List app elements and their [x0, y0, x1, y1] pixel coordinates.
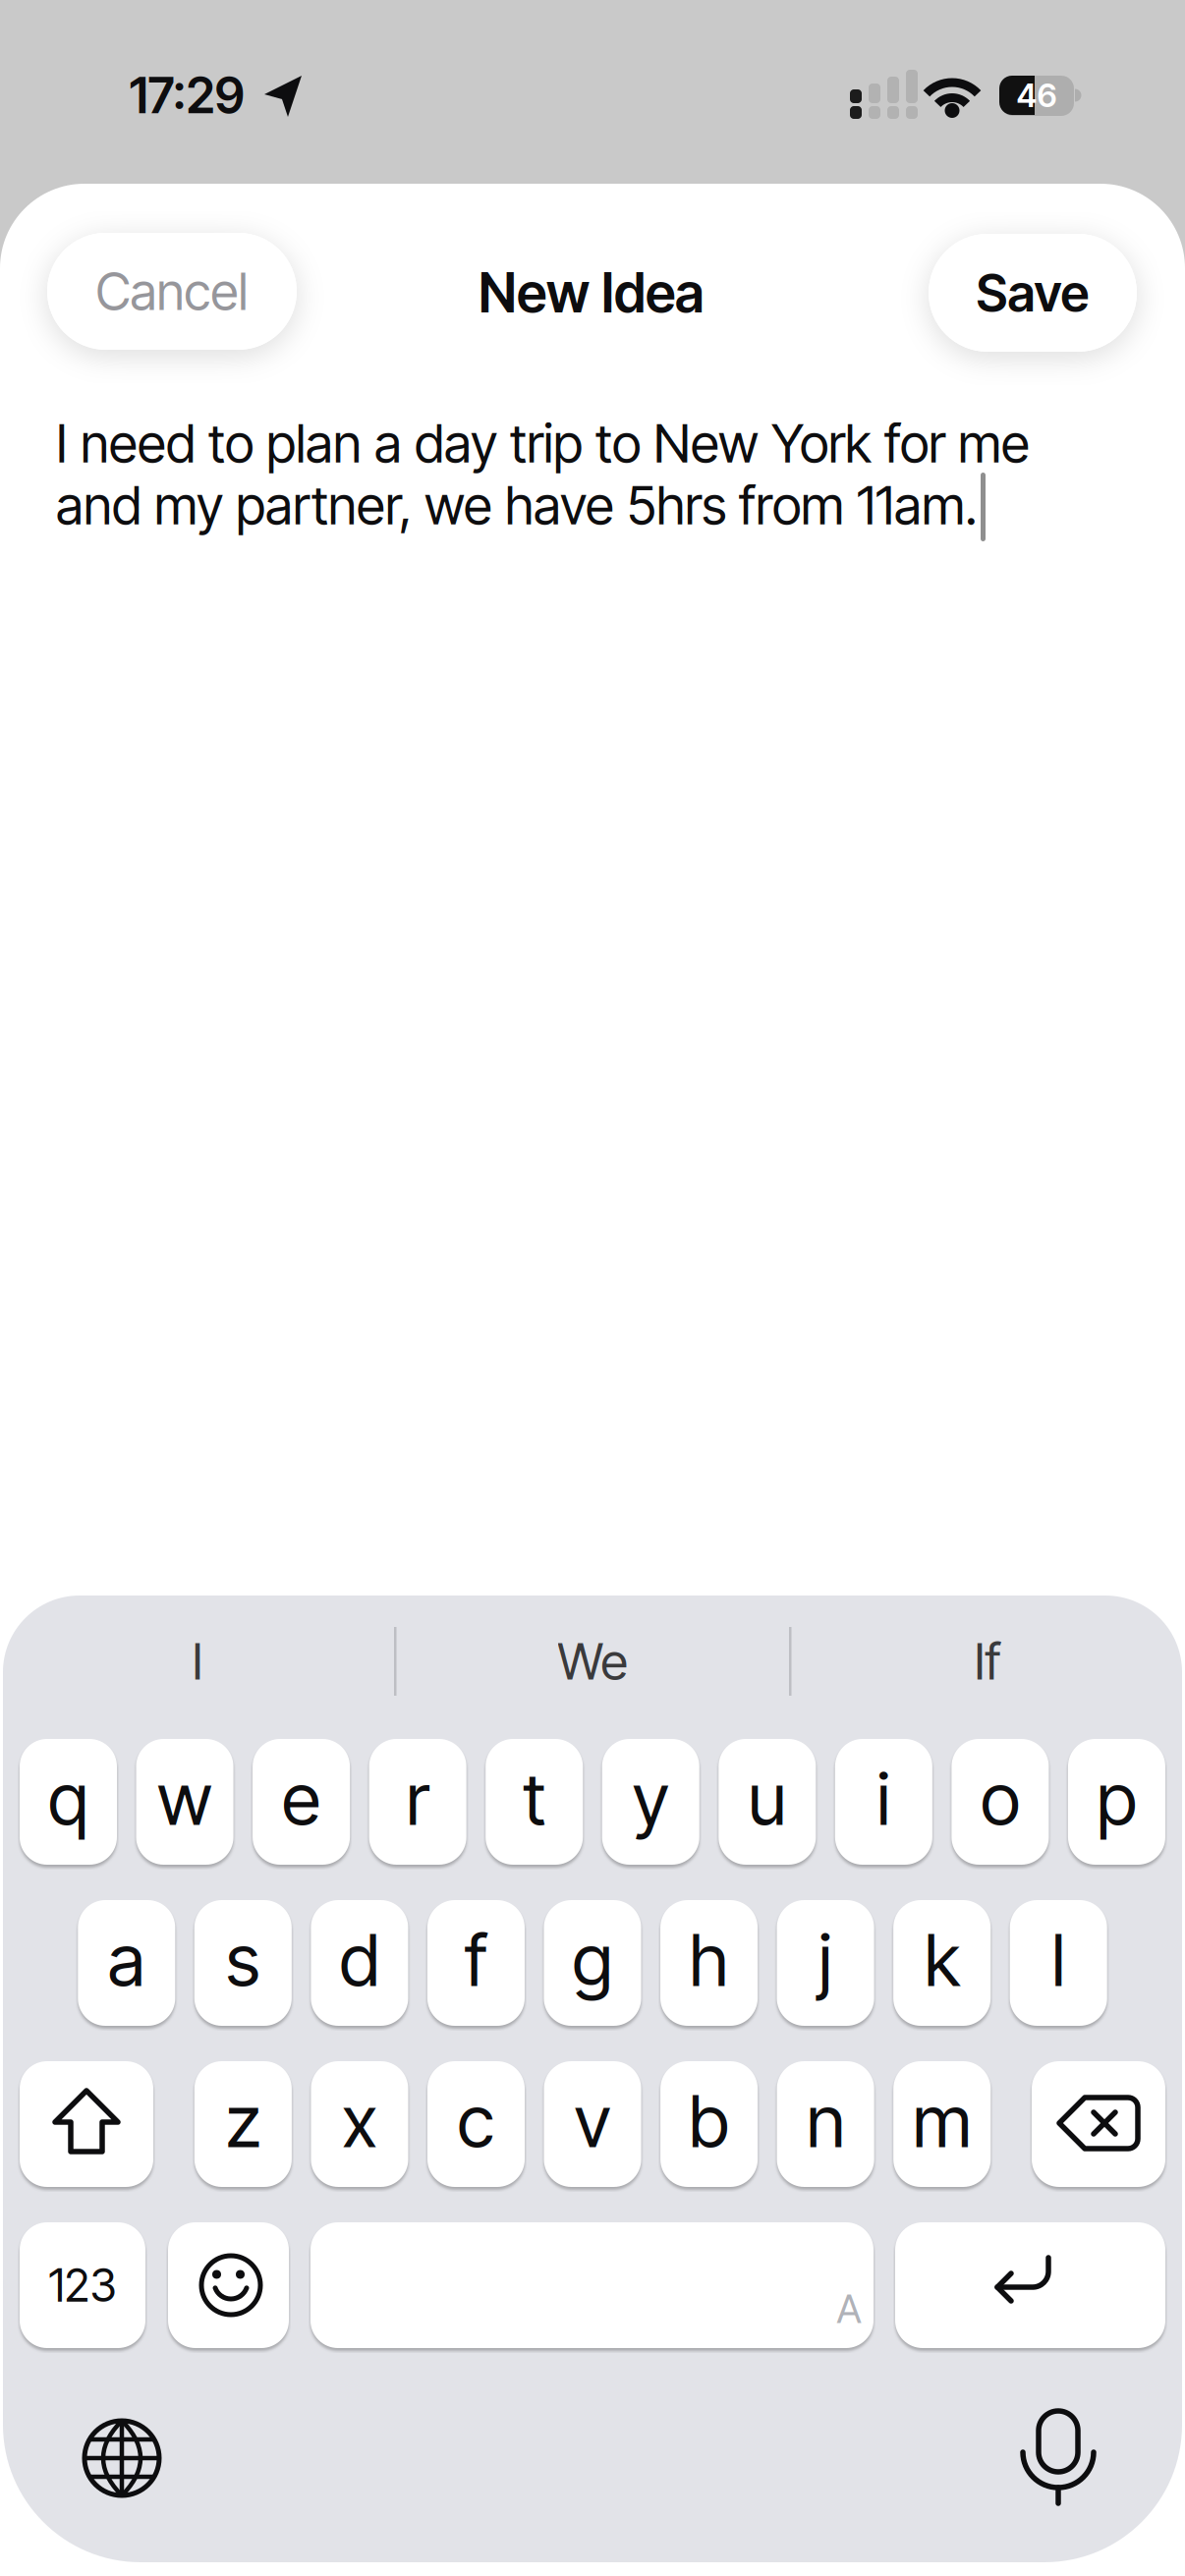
button[interactable]: b	[660, 2061, 758, 2187]
button[interactable]: y	[602, 1739, 699, 1865]
staticText: u	[748, 1755, 786, 1842]
button[interactable]: i	[835, 1739, 932, 1865]
staticText: 17:29	[129, 66, 244, 125]
button[interactable]	[999, 2397, 1117, 2515]
staticText: Save	[976, 262, 1089, 324]
button[interactable]: o	[952, 1739, 1049, 1865]
staticText: 123	[49, 2258, 116, 2313]
staticText: h	[689, 1917, 729, 2003]
button[interactable]	[168, 2222, 289, 2348]
staticText: f	[465, 1917, 487, 2003]
button[interactable]: Cancel	[47, 233, 297, 350]
button[interactable]: t	[486, 1739, 583, 1865]
button[interactable]	[63, 2399, 181, 2517]
staticText: s	[226, 1917, 260, 2003]
staticText: I	[192, 1631, 203, 1692]
button[interactable]: We	[406, 1607, 779, 1715]
button[interactable]: m	[893, 2061, 991, 2187]
button[interactable]: f	[427, 1900, 525, 2026]
staticText: d	[339, 1917, 380, 2003]
button[interactable]	[895, 2222, 1165, 2348]
button[interactable]: z	[194, 2061, 292, 2187]
staticText: m	[913, 2078, 971, 2164]
staticText: l	[1052, 1917, 1065, 2003]
staticText: p	[1097, 1755, 1137, 1842]
staticText: Cancel	[96, 260, 248, 322]
staticText: A	[837, 2285, 861, 2333]
staticText: t	[523, 1755, 546, 1842]
button[interactable]: j	[777, 1900, 874, 2026]
button[interactable]: a	[78, 1900, 175, 2026]
button[interactable]: s	[194, 1900, 292, 2026]
staticText: v	[574, 2078, 611, 2164]
button[interactable]: q	[20, 1739, 117, 1865]
button[interactable]: A	[310, 2222, 874, 2348]
button[interactable]: p	[1068, 1739, 1165, 1865]
staticText: b	[689, 2078, 729, 2164]
button[interactable]: x	[311, 2061, 408, 2187]
staticText: o	[981, 1755, 1020, 1842]
staticText: r	[406, 1755, 429, 1842]
staticText: x	[342, 2078, 377, 2164]
staticText: e	[282, 1755, 320, 1842]
staticText: We	[558, 1631, 627, 1692]
button[interactable]: d	[311, 1900, 408, 2026]
staticText: y	[633, 1755, 669, 1842]
staticText: i	[877, 1755, 891, 1842]
button[interactable]	[1032, 2061, 1165, 2187]
button[interactable]: e	[253, 1739, 350, 1865]
button[interactable]: r	[369, 1739, 466, 1865]
staticText: c	[457, 2078, 495, 2164]
button[interactable]: k	[893, 1900, 991, 2026]
button[interactable]: 123	[20, 2222, 145, 2348]
button[interactable]: Save	[929, 234, 1137, 352]
staticText: w	[157, 1755, 212, 1842]
staticText: z	[225, 2078, 261, 2164]
staticText: If	[974, 1631, 1001, 1692]
staticText: and my partner, we have 5hrs from 11am.	[56, 474, 978, 537]
button[interactable]: w	[136, 1739, 233, 1865]
staticText: q	[48, 1755, 88, 1842]
button[interactable]: n	[777, 2061, 874, 2187]
button[interactable]: v	[544, 2061, 641, 2187]
button[interactable]: h	[660, 1900, 758, 2026]
button[interactable]: g	[544, 1900, 641, 2026]
staticText: g	[572, 1917, 613, 2003]
button[interactable]: c	[427, 2061, 525, 2187]
staticText: 46	[1016, 76, 1057, 115]
staticText: k	[924, 1917, 960, 2003]
staticText: a	[108, 1917, 145, 2003]
button[interactable]: I	[11, 1607, 384, 1715]
staticText: n	[806, 2078, 845, 2164]
staticText: New Idea	[479, 260, 705, 325]
button[interactable]: If	[801, 1607, 1174, 1715]
button[interactable]: u	[719, 1739, 816, 1865]
staticText: j	[819, 1917, 832, 2003]
button[interactable]: l	[1010, 1900, 1107, 2026]
button[interactable]	[20, 2061, 153, 2187]
staticText: I need to plan a day trip to New York fo…	[56, 412, 1030, 475]
